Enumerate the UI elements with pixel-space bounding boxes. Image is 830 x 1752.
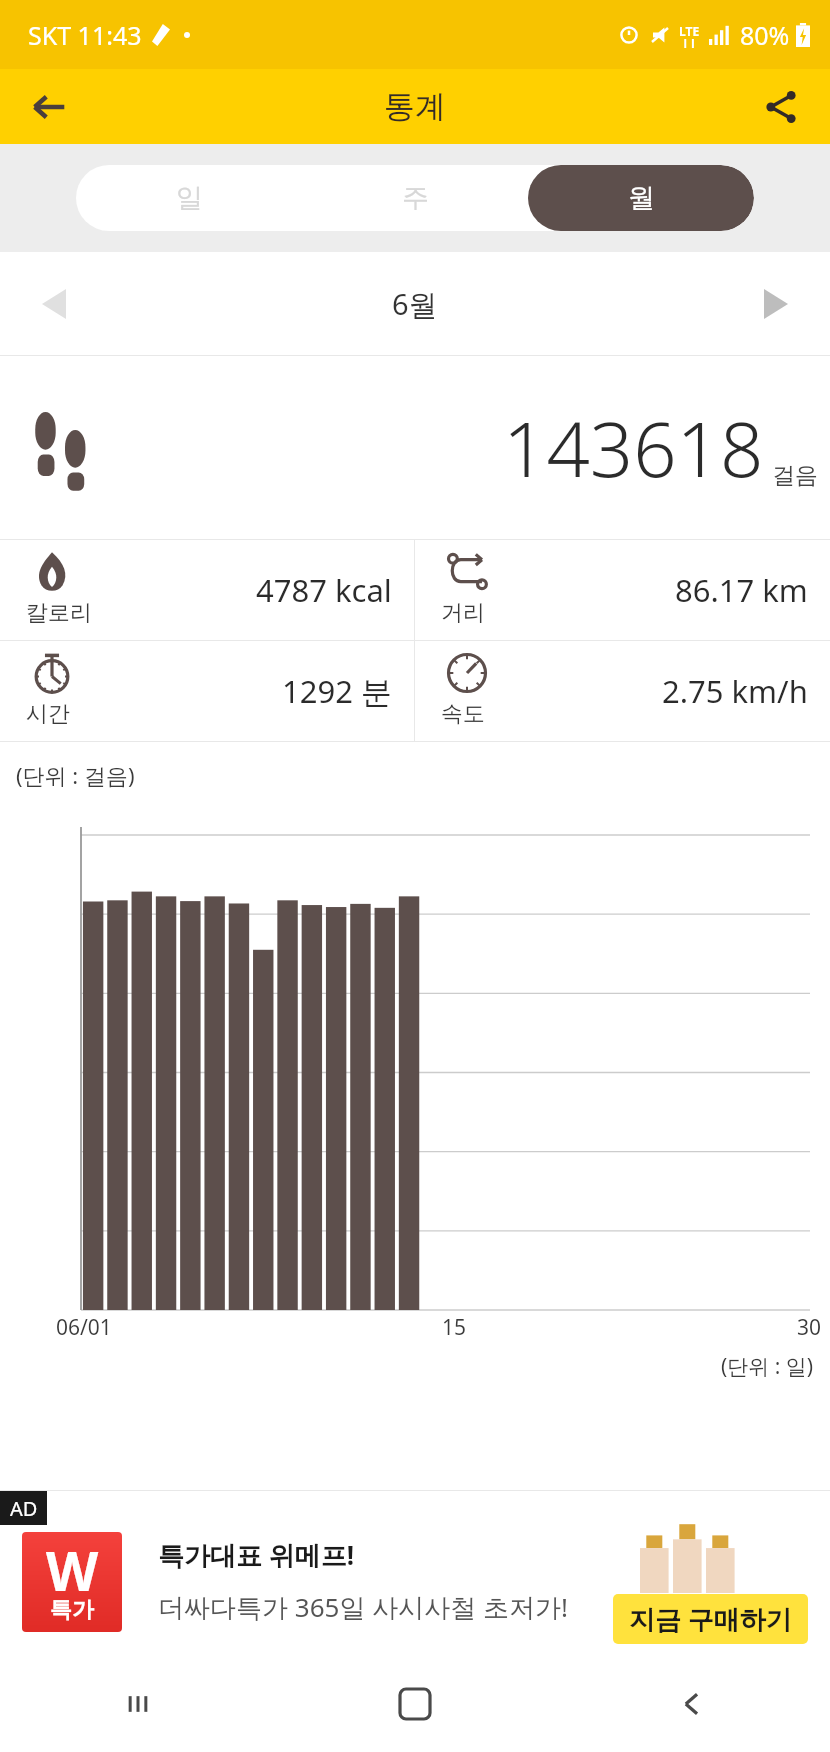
staticText: 월: [628, 181, 655, 215]
staticText: 80%: [740, 18, 790, 52]
staticText: 통계: [384, 87, 446, 126]
staticText: SKT 11:43: [28, 18, 142, 52]
button[interactable]: Recents: [0, 1656, 276, 1752]
staticText: 특가대표 위메프!: [158, 1537, 355, 1573]
staticText: 거리: [441, 599, 485, 627]
staticText: 143618: [503, 396, 764, 500]
staticText: 30: [797, 1313, 822, 1342]
button[interactable]: AD: [0, 1491, 830, 1656]
button[interactable]: 시간: [0, 641, 414, 741]
staticText: AD: [10, 1495, 38, 1522]
staticText: 걸음: [772, 461, 818, 490]
button[interactable]: 속도: [415, 641, 830, 741]
staticText: (단위 : 걸음): [16, 760, 135, 790]
staticText: 일: [176, 181, 203, 215]
button[interactable]: Back: [553, 1656, 830, 1752]
staticText: (단위 : 일): [721, 1352, 814, 1381]
button[interactable]: Home: [276, 1656, 553, 1752]
staticText: W: [46, 1533, 99, 1607]
button[interactable]: 지금 구매하기: [629, 1601, 792, 1637]
staticText: 4787 kcal: [256, 569, 392, 611]
staticText: 6월: [392, 284, 438, 324]
staticText: 06/01: [56, 1313, 112, 1342]
staticText: 속도: [441, 700, 485, 728]
button[interactable]: 거리: [415, 540, 830, 640]
button[interactable]: 주: [302, 165, 528, 231]
button[interactable]: Back: [18, 76, 80, 138]
staticText: 더싸다특가 365일 사시사철 초저가!: [158, 1589, 568, 1625]
button[interactable]: 칼로리: [0, 540, 414, 640]
staticText: 1292 분: [282, 670, 392, 712]
staticText: 칼로리: [26, 599, 92, 627]
button[interactable]: 월: [528, 165, 754, 231]
staticText: LTE: [679, 23, 700, 39]
button[interactable]: Previous month: [26, 276, 82, 332]
staticText: 15: [442, 1313, 467, 1342]
button[interactable]: 일: [76, 165, 302, 231]
button[interactable]: Share: [750, 76, 812, 138]
staticText: 2.75 km/h: [662, 670, 808, 712]
staticText: 시간: [26, 700, 70, 728]
button[interactable]: Next month: [748, 276, 804, 332]
staticText: 주: [402, 181, 429, 215]
staticText: 특가: [50, 1596, 94, 1624]
staticText: 86.17 km: [675, 569, 808, 611]
staticText: 지금 구매하기: [629, 1601, 792, 1637]
